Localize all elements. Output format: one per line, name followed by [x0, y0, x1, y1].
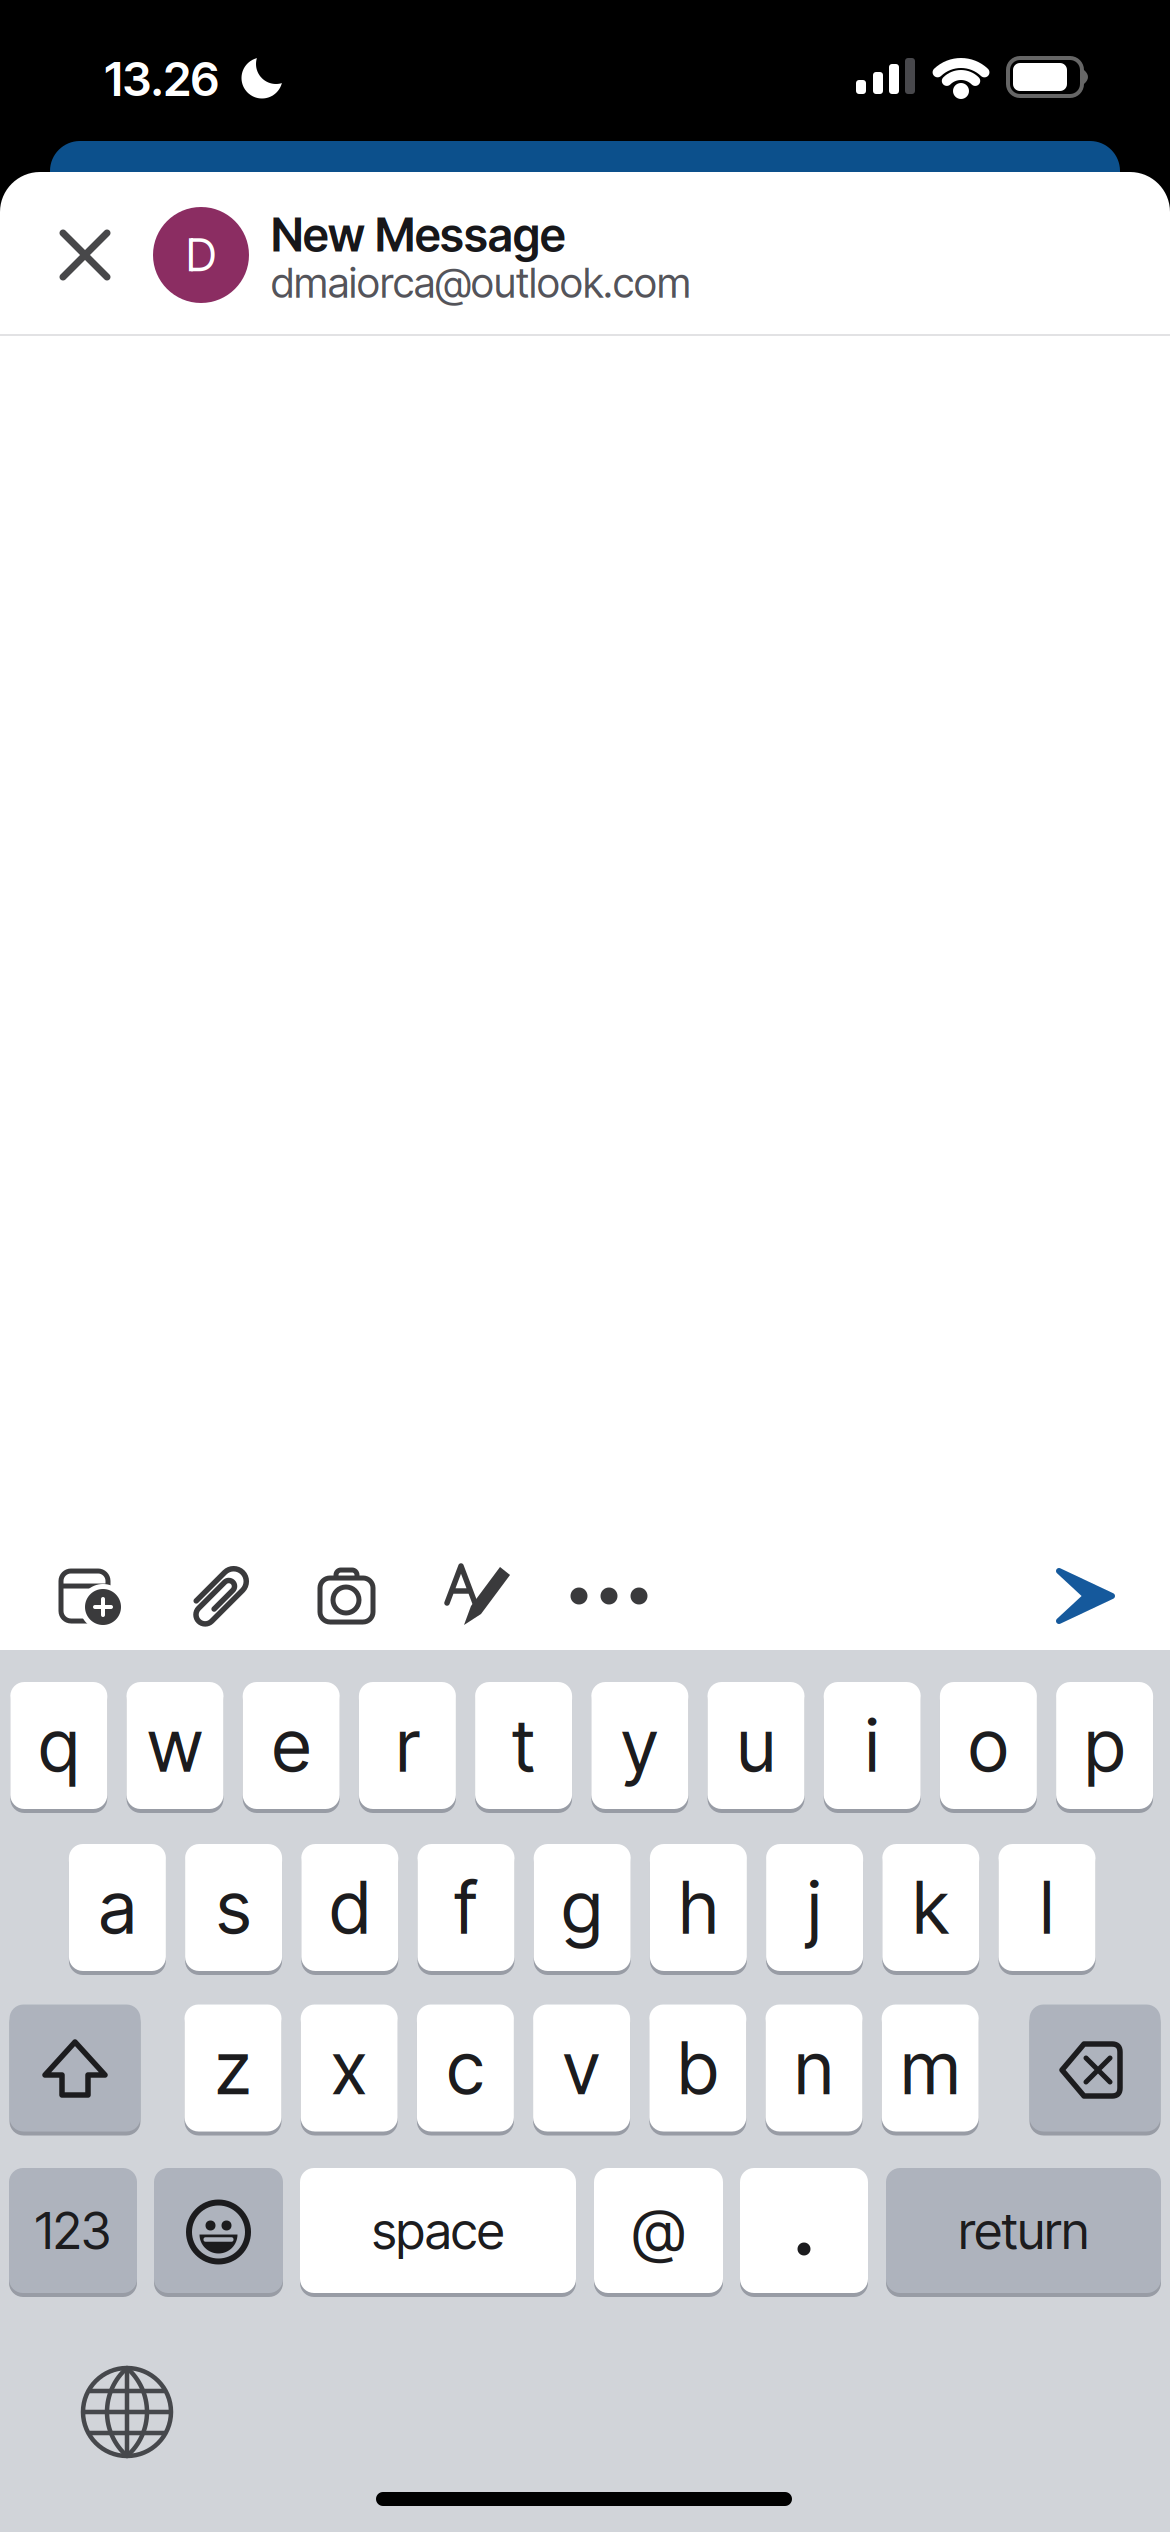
staticText: t	[512, 1702, 535, 1789]
staticText: s	[217, 1864, 251, 1951]
staticText: u	[737, 1702, 775, 1789]
staticText: 123	[35, 2200, 111, 2261]
staticText: D	[186, 228, 216, 282]
staticText: f	[454, 1864, 477, 1951]
staticText: w	[147, 1702, 202, 1789]
staticText: g	[562, 1864, 603, 1951]
staticText: e	[272, 1702, 310, 1789]
staticText: q	[39, 1702, 79, 1789]
staticText: p	[1085, 1702, 1125, 1789]
staticText: l	[1040, 1864, 1054, 1951]
staticText: return	[958, 2200, 1088, 2261]
staticText: n	[794, 2024, 833, 2111]
staticText: d	[330, 1864, 370, 1951]
staticText: dmaiorca@outlook.com	[271, 258, 691, 308]
staticText: x	[331, 2024, 367, 2111]
staticText: j	[808, 1864, 822, 1951]
staticText: y	[621, 1702, 658, 1789]
staticText: v	[563, 2024, 600, 2111]
staticText: space	[372, 2200, 504, 2261]
staticText: h	[679, 1864, 718, 1951]
staticText: c	[447, 2024, 484, 2111]
staticText: a	[99, 1864, 136, 1951]
staticText: m	[901, 2024, 960, 2111]
staticText: z	[215, 2024, 251, 2111]
staticText: 13.26	[104, 51, 219, 107]
staticText: New Message	[271, 207, 565, 263]
staticText: i	[865, 1702, 879, 1789]
staticText: b	[678, 2024, 718, 2111]
staticText: o	[968, 1702, 1008, 1789]
staticText: k	[913, 1864, 949, 1951]
staticText: r	[396, 1702, 419, 1789]
staticText: @	[632, 2194, 685, 2267]
